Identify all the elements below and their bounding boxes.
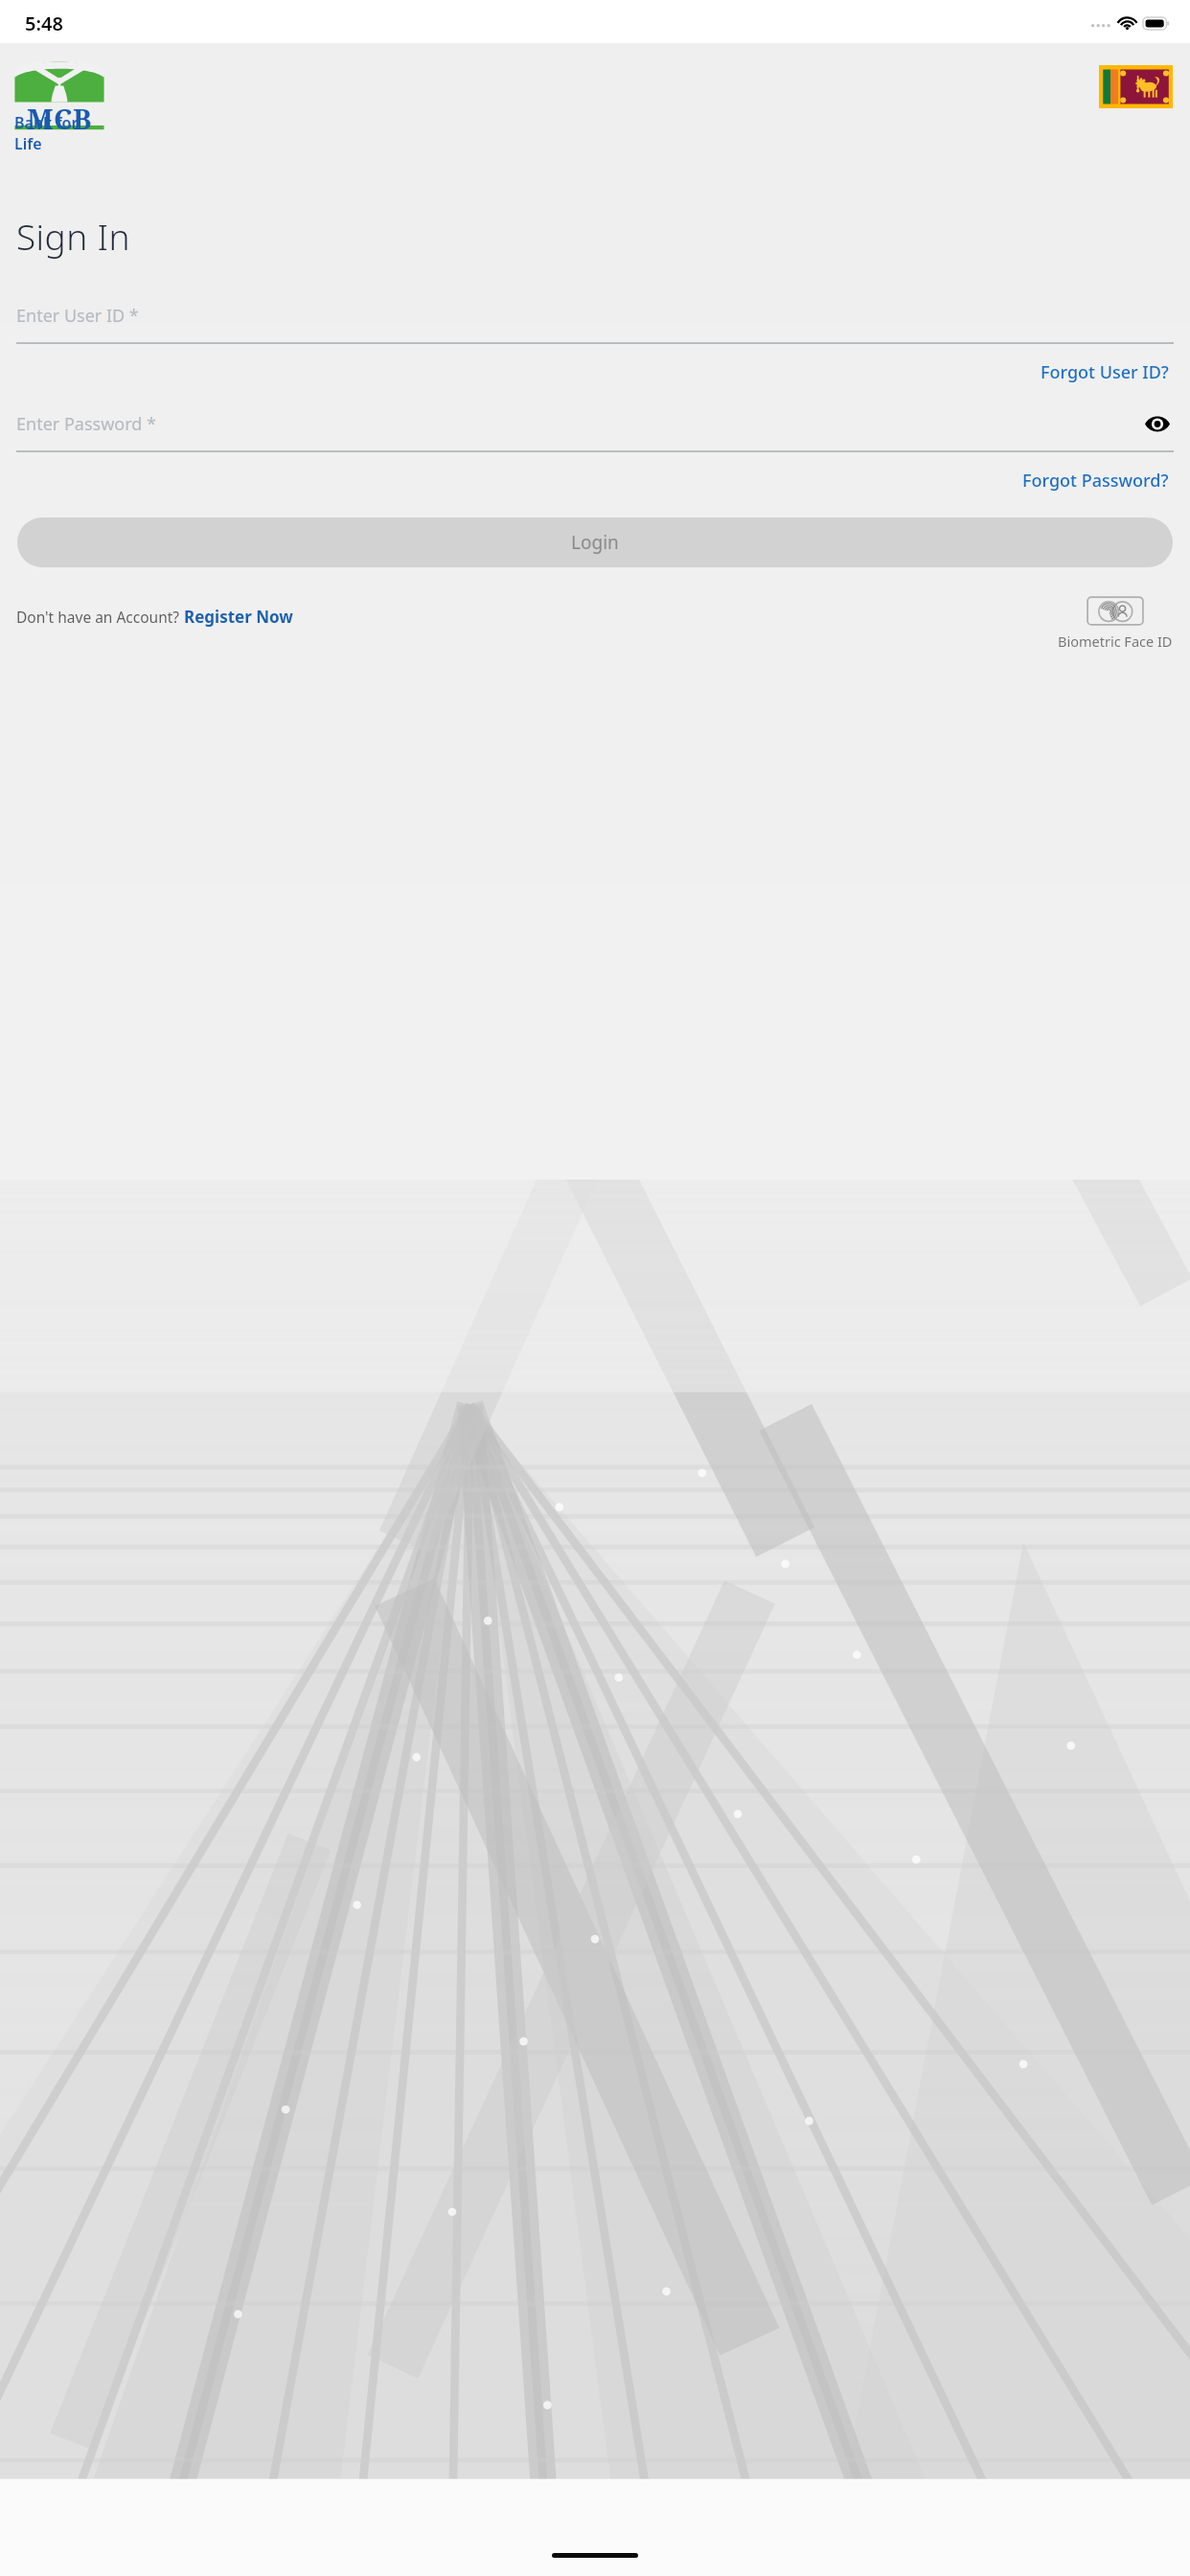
staticText: Register Now bbox=[184, 606, 293, 628]
staticText: 5:48 bbox=[25, 11, 63, 36]
staticText: Enter User ID * bbox=[16, 304, 139, 328]
staticText: Login bbox=[571, 530, 619, 555]
staticText: Don't have an Account? bbox=[16, 607, 184, 627]
staticText: Bank for Life bbox=[14, 112, 105, 154]
staticText: Biometric Face ID bbox=[1058, 632, 1173, 651]
button[interactable]: Don't have an Account? bbox=[16, 606, 293, 628]
button[interactable]: Forgot Password? bbox=[1018, 465, 1173, 496]
staticText: Forgot Password? bbox=[1022, 469, 1169, 493]
staticText: Forgot User ID? bbox=[1041, 360, 1169, 384]
staticText: MCB bbox=[13, 100, 105, 137]
button[interactable]: Enter User ID * bbox=[16, 296, 1174, 344]
button[interactable]: Forgot User ID? bbox=[1037, 356, 1173, 388]
button[interactable]: Login bbox=[17, 517, 1173, 567]
button[interactable]: Show password bbox=[1141, 407, 1174, 440]
button[interactable]: Enter Password * bbox=[16, 404, 1174, 452]
button[interactable]: Biometric Face ID bbox=[1087, 596, 1144, 626]
staticText: Sign In bbox=[16, 212, 130, 260]
staticText: Enter Password * bbox=[16, 412, 156, 436]
